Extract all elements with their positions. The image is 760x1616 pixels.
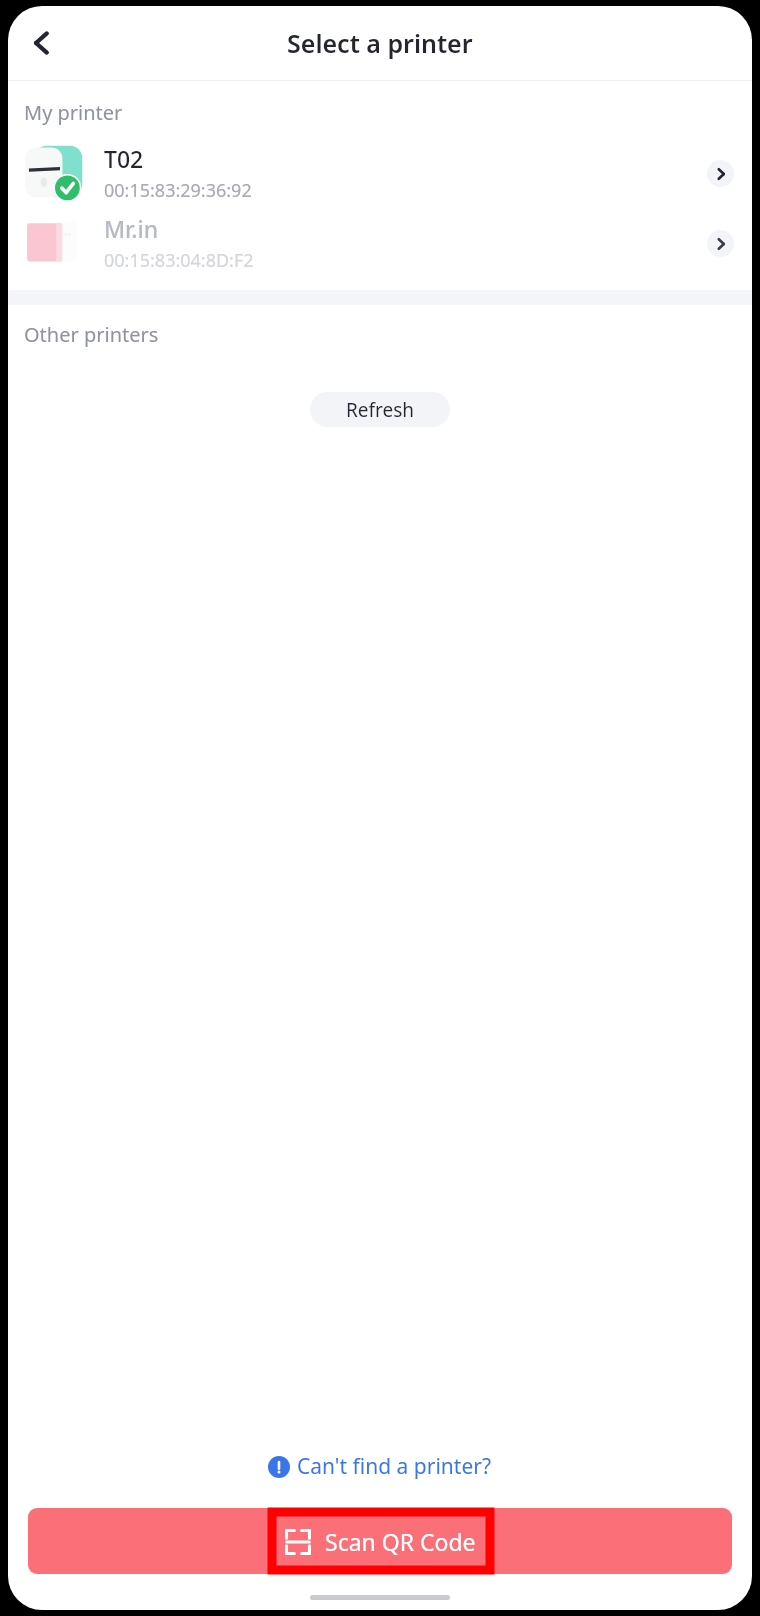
staticText: Can't find a printer? xyxy=(297,1452,492,1481)
staticText: 00:15:83:04:8D:F2 xyxy=(104,248,254,273)
button[interactable]: Scan QR Code xyxy=(28,1508,732,1574)
button[interactable]: Open Mr.in xyxy=(707,230,734,257)
button[interactable]: Mr.in xyxy=(8,208,752,278)
staticText: Other printers xyxy=(24,321,159,348)
staticText: T02 xyxy=(104,143,144,174)
button[interactable]: Refresh xyxy=(310,392,450,427)
staticText: Refresh xyxy=(346,397,415,423)
button[interactable]: Back xyxy=(14,15,70,71)
button[interactable]: Open T02 xyxy=(707,160,734,187)
staticText: Scan QR Code xyxy=(325,1526,476,1557)
button[interactable]: Can't find a printer? xyxy=(8,1452,752,1481)
staticText: Select a printer xyxy=(287,26,473,60)
staticText: My printer xyxy=(24,99,123,126)
staticText: Mr.in xyxy=(104,213,159,244)
staticText: 00:15:83:29:36:92 xyxy=(104,178,252,203)
button[interactable]: T02 xyxy=(8,138,752,208)
